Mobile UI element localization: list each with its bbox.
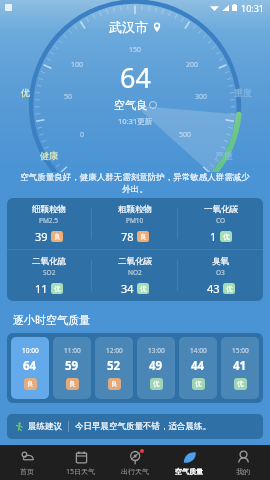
staticText: 良 [140, 233, 147, 241]
staticText: 优 [195, 380, 202, 388]
staticText: 64 [23, 358, 37, 374]
staticText: 34 [121, 281, 134, 296]
staticText: 空气质量 [175, 467, 203, 476]
button[interactable]: 15:00 [221, 337, 259, 399]
button[interactable]: 空气质量 [162, 445, 216, 480]
staticText: 10:00 [22, 346, 39, 355]
button[interactable]: Location [152, 22, 162, 32]
button[interactable]: 14:00 [179, 337, 217, 399]
staticText: 11 [35, 281, 48, 296]
button[interactable]: 晨练建议 [7, 414, 263, 439]
button[interactable]: 臭氧 [178, 250, 263, 301]
staticText: O3 [216, 268, 225, 277]
button[interactable]: 二氧化硫 [7, 250, 91, 301]
staticText: 空气良 [114, 98, 147, 112]
button[interactable]: 10:00 [11, 337, 49, 399]
staticText: 100 [71, 60, 84, 70]
staticText: 15日天气 [66, 467, 96, 477]
staticText: 一氧化碳 [204, 204, 238, 215]
staticText: PM10 [126, 216, 144, 225]
staticText: 59 [65, 358, 79, 374]
staticText: 粗颗粒物 [118, 204, 152, 215]
button[interactable]: 二氧化碳 [92, 250, 177, 301]
staticText: 逐小时空气质量 [13, 313, 90, 327]
staticText: 1 [210, 229, 217, 244]
staticText: 严重 [215, 150, 233, 161]
staticText: NO2 [128, 268, 142, 277]
staticText: 150 [129, 45, 142, 55]
staticText: 44 [191, 358, 205, 374]
staticText: 良 [27, 380, 34, 388]
button[interactable]: 13:00 [137, 337, 175, 399]
staticText: 200 [186, 60, 199, 70]
button[interactable]: 11:00 [53, 337, 91, 399]
staticText: SO2 [43, 268, 56, 277]
staticText: 优 [21, 87, 30, 98]
staticText: 64 [120, 59, 151, 96]
staticText: 今日早晨空气质量不错，适合晨练。 [75, 421, 211, 432]
staticText: 12:00 [106, 346, 123, 355]
staticText: 优 [237, 380, 244, 388]
staticText: 细颗粒物 [32, 204, 66, 215]
staticText: 优 [226, 285, 233, 293]
staticText: 13:00 [148, 346, 165, 355]
staticText: 78 [121, 229, 134, 244]
button[interactable]: 出行天气 [108, 445, 162, 480]
staticText: PM2.5 [39, 216, 59, 225]
staticText: 武汉市 [109, 19, 148, 35]
staticText: 52 [107, 358, 121, 374]
staticText: 0 [80, 130, 85, 140]
button[interactable]: 一氧化碳 [178, 198, 263, 249]
button[interactable]: 我的 [216, 445, 270, 480]
staticText: 良 [111, 380, 118, 388]
staticText: 49 [149, 358, 163, 374]
staticText: 健康 [40, 150, 58, 161]
staticText: 41 [233, 358, 247, 374]
staticText: CO [216, 216, 226, 225]
staticText: 43 [207, 281, 220, 296]
staticText: 良 [54, 233, 61, 241]
staticText: 10:31 [241, 2, 265, 14]
staticText: 出行天气 [121, 467, 149, 476]
staticText: 11:00 [64, 346, 81, 355]
staticText: 我的 [236, 467, 250, 476]
staticText: 优 [153, 380, 160, 388]
staticText: 50 [64, 92, 73, 102]
button[interactable]: 12:00 [95, 337, 133, 399]
button[interactable]: 首页 [0, 445, 54, 480]
button[interactable]: 15日天气 [54, 445, 108, 480]
staticText: 臭氧 [212, 256, 229, 267]
staticText: 二氧化硫 [32, 256, 66, 267]
staticText: 10:31更新 [118, 116, 153, 126]
staticText: 15:00 [232, 346, 249, 355]
staticText: 优 [140, 285, 147, 293]
staticText: 二氧化碳 [118, 256, 152, 267]
staticText: 39 [35, 229, 48, 244]
staticText: 优 [223, 233, 230, 241]
button[interactable]: 细颗粒物 [7, 198, 91, 249]
button[interactable]: 粗颗粒物 [92, 198, 177, 249]
staticText: 首页 [20, 467, 34, 476]
staticText: 重度 [234, 87, 252, 98]
staticText: 空气质量良好，健康人群无需刻意防护，异常敏感人群需减少外出。 [19, 172, 251, 194]
staticText: 14:00 [190, 346, 207, 355]
staticText: 500 [179, 130, 192, 140]
staticText: 晨练建议 [28, 421, 62, 432]
staticText: 优 [54, 285, 61, 293]
staticText: 300 [195, 92, 208, 102]
staticText: 良 [69, 380, 76, 388]
